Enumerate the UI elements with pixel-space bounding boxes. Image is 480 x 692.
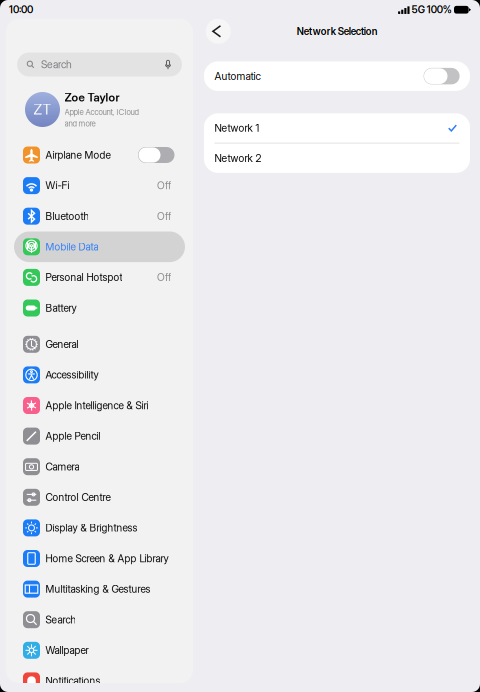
staticText: Off [157,210,171,222]
staticText: Mobile Data [45,241,98,253]
staticText: Battery [45,302,76,314]
button[interactable]: General [14,329,185,360]
staticText: Camera [45,460,79,473]
button[interactable]: Mobile Data [14,231,185,262]
button[interactable]: Wi-Fi [14,170,185,201]
staticText: Network 1 [214,122,259,134]
button[interactable]: Control Centre [14,482,185,513]
staticText: Home Screen & App Library [45,552,168,565]
staticText: Automatic [214,70,260,82]
staticText: Apple Intelligence & Siri [45,399,148,412]
button[interactable]: Network 2 [204,143,470,173]
button[interactable]: Camera [14,451,185,482]
button[interactable]: Airplane Mode [14,140,185,170]
staticText: Bluetooth [45,210,89,222]
button[interactable]: Automatic [204,61,470,91]
button[interactable]: Network 1 [204,113,470,143]
staticText: General [45,338,78,350]
button[interactable]: Accessibility [14,360,185,390]
staticText: and more [64,119,95,128]
button[interactable]: Battery [14,293,185,323]
staticText: Apple Pencil [45,430,100,442]
staticText: 5G 100% [412,4,452,16]
button[interactable]: Home Screen & App Library [14,543,185,574]
button[interactable]: Display & Brightness [14,513,185,543]
button[interactable]: Multitasking & Gestures [14,574,185,604]
button[interactable]: Apple Intelligence & Siri [14,390,185,421]
button[interactable]: Personal Hotspot [14,262,185,293]
staticText: Accessibility [45,369,98,381]
staticText: Wallpaper [45,644,88,656]
staticText: Apple Account, iCloud [64,107,138,117]
button[interactable]: Notifications [14,666,185,692]
staticText: ZT [33,101,51,118]
staticText: Personal Hotspot [45,271,122,283]
staticText: Multitasking & Gestures [45,583,150,595]
button[interactable]: Bluetooth [14,201,185,231]
button[interactable]: Search [14,604,185,635]
button[interactable]: Wallpaper [14,635,185,666]
staticText: Off [157,271,171,283]
staticText: Airplane Mode [45,149,110,161]
staticText: Off [157,179,171,192]
staticText: Search [41,58,72,71]
staticText: Notifications [45,675,100,687]
staticText: Search [45,613,76,626]
staticText: Network 2 [214,152,261,164]
staticText: Display & Brightness [45,522,137,534]
staticText: Wi-Fi [45,179,69,192]
staticText: Control Centre [45,491,110,503]
button[interactable]: ZT [6,92,193,127]
staticText: 10:00 [9,4,33,16]
staticText: Network Selection [297,25,378,37]
button[interactable]: Apple Pencil [14,421,185,451]
button[interactable]: Back [206,19,231,44]
staticText: Zoe Taylor [64,90,119,104]
